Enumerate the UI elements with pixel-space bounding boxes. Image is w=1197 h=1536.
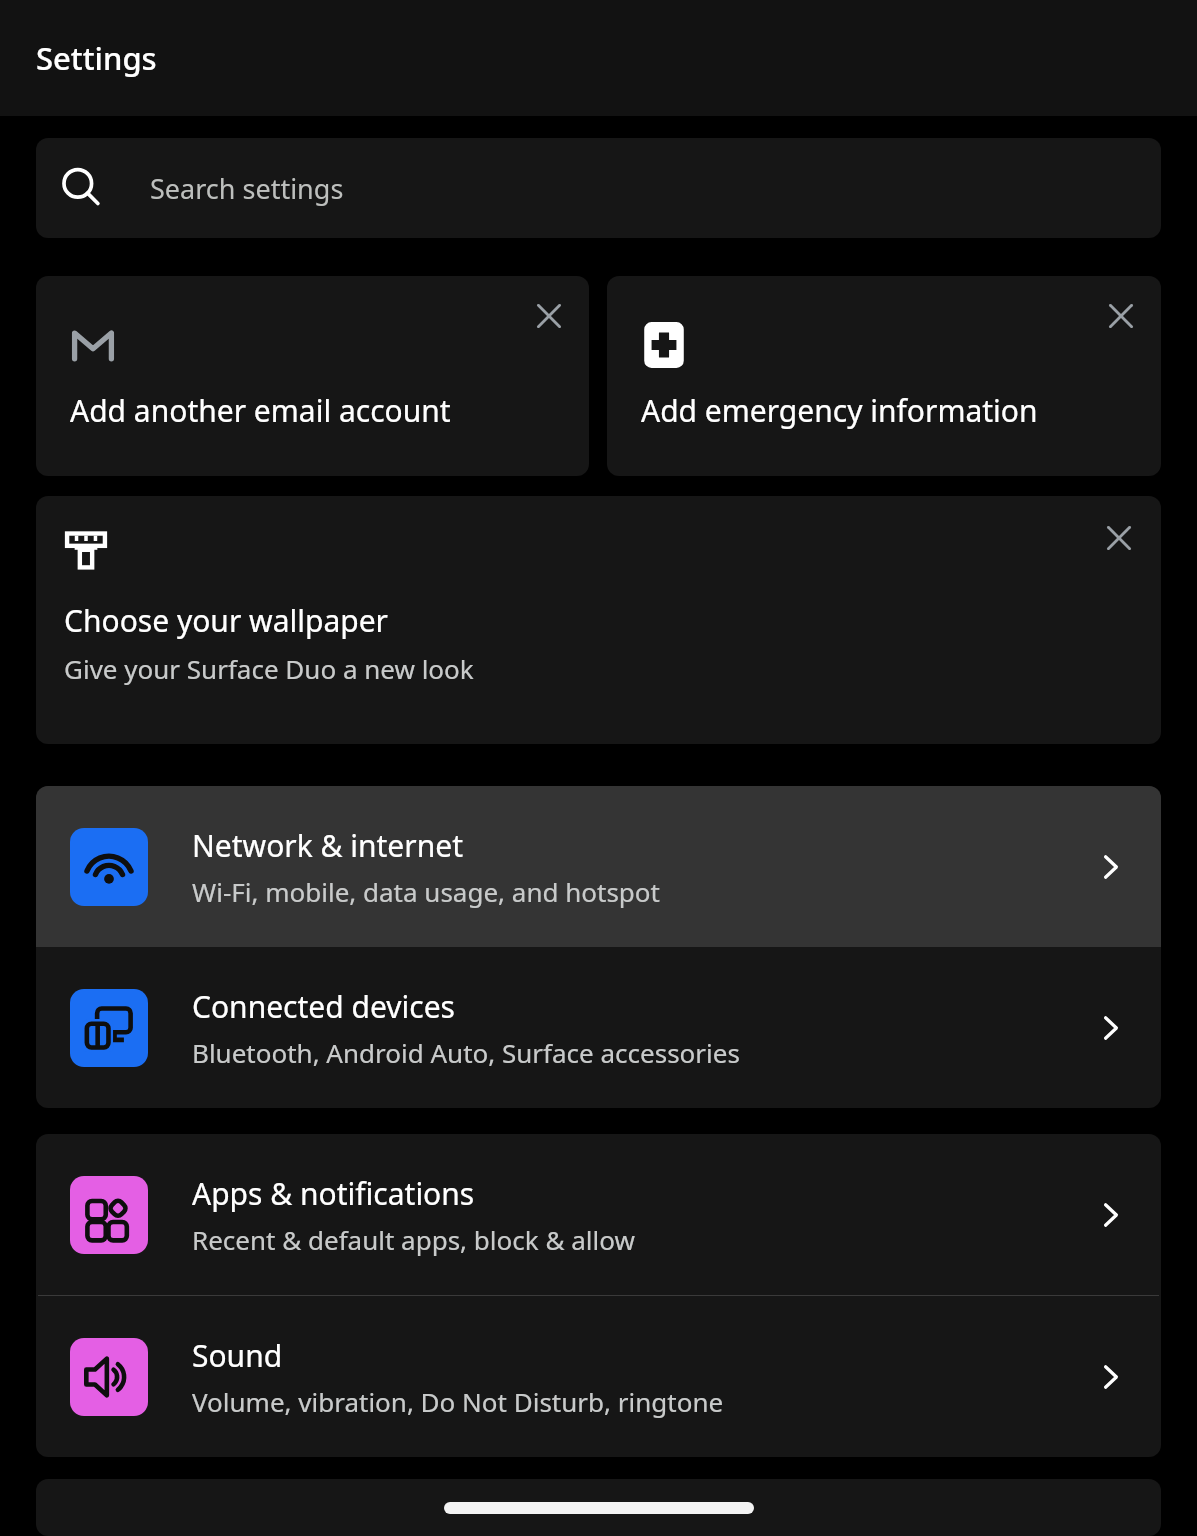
staticText: Apps & notifications bbox=[192, 1173, 475, 1214]
staticText: Search settings bbox=[150, 170, 344, 207]
staticText: Settings bbox=[36, 37, 157, 79]
button[interactable]: Sound bbox=[1069, 1335, 1153, 1419]
staticText: Bluetooth, Android Auto, Surface accesso… bbox=[192, 1035, 740, 1070]
button[interactable]: Dismiss wallpaper suggestion bbox=[1093, 512, 1145, 564]
button[interactable]: Dismiss Add another email account bbox=[523, 290, 575, 342]
staticText: Add another email account bbox=[70, 390, 451, 431]
staticText: Volume, vibration, Do Not Disturb, ringt… bbox=[192, 1384, 724, 1419]
button[interactable]: Network & internet bbox=[1069, 825, 1153, 909]
button[interactable]: Apps & notifications bbox=[1069, 1173, 1153, 1257]
button[interactable]: Network & internet bbox=[36, 786, 1161, 947]
button[interactable]: Sound bbox=[36, 1296, 1161, 1457]
button[interactable]: Search settings bbox=[36, 138, 1161, 238]
staticText: Network & internet bbox=[192, 825, 463, 866]
staticText: Choose your wallpaper bbox=[64, 600, 388, 641]
staticText: Add emergency information bbox=[641, 390, 1038, 431]
button[interactable]: Connected devices bbox=[36, 947, 1161, 1108]
button[interactable]: Dismiss Add emergency information bbox=[1095, 290, 1147, 342]
button[interactable]: Add another email account bbox=[36, 276, 589, 476]
staticText: Sound bbox=[192, 1335, 283, 1376]
button[interactable]: Choose your wallpaper bbox=[36, 496, 1161, 744]
button[interactable]: Add emergency information bbox=[607, 276, 1161, 476]
button[interactable]: Connected devices bbox=[1069, 986, 1153, 1070]
button[interactable]: Apps & notifications bbox=[36, 1134, 1161, 1295]
staticText: Give your Surface Duo a new look bbox=[64, 651, 474, 686]
button[interactable] bbox=[36, 1479, 1161, 1536]
staticText: Wi-Fi, mobile, data usage, and hotspot bbox=[192, 874, 660, 909]
staticText: Connected devices bbox=[192, 986, 455, 1027]
staticText: Recent & default apps, block & allow bbox=[192, 1222, 635, 1257]
